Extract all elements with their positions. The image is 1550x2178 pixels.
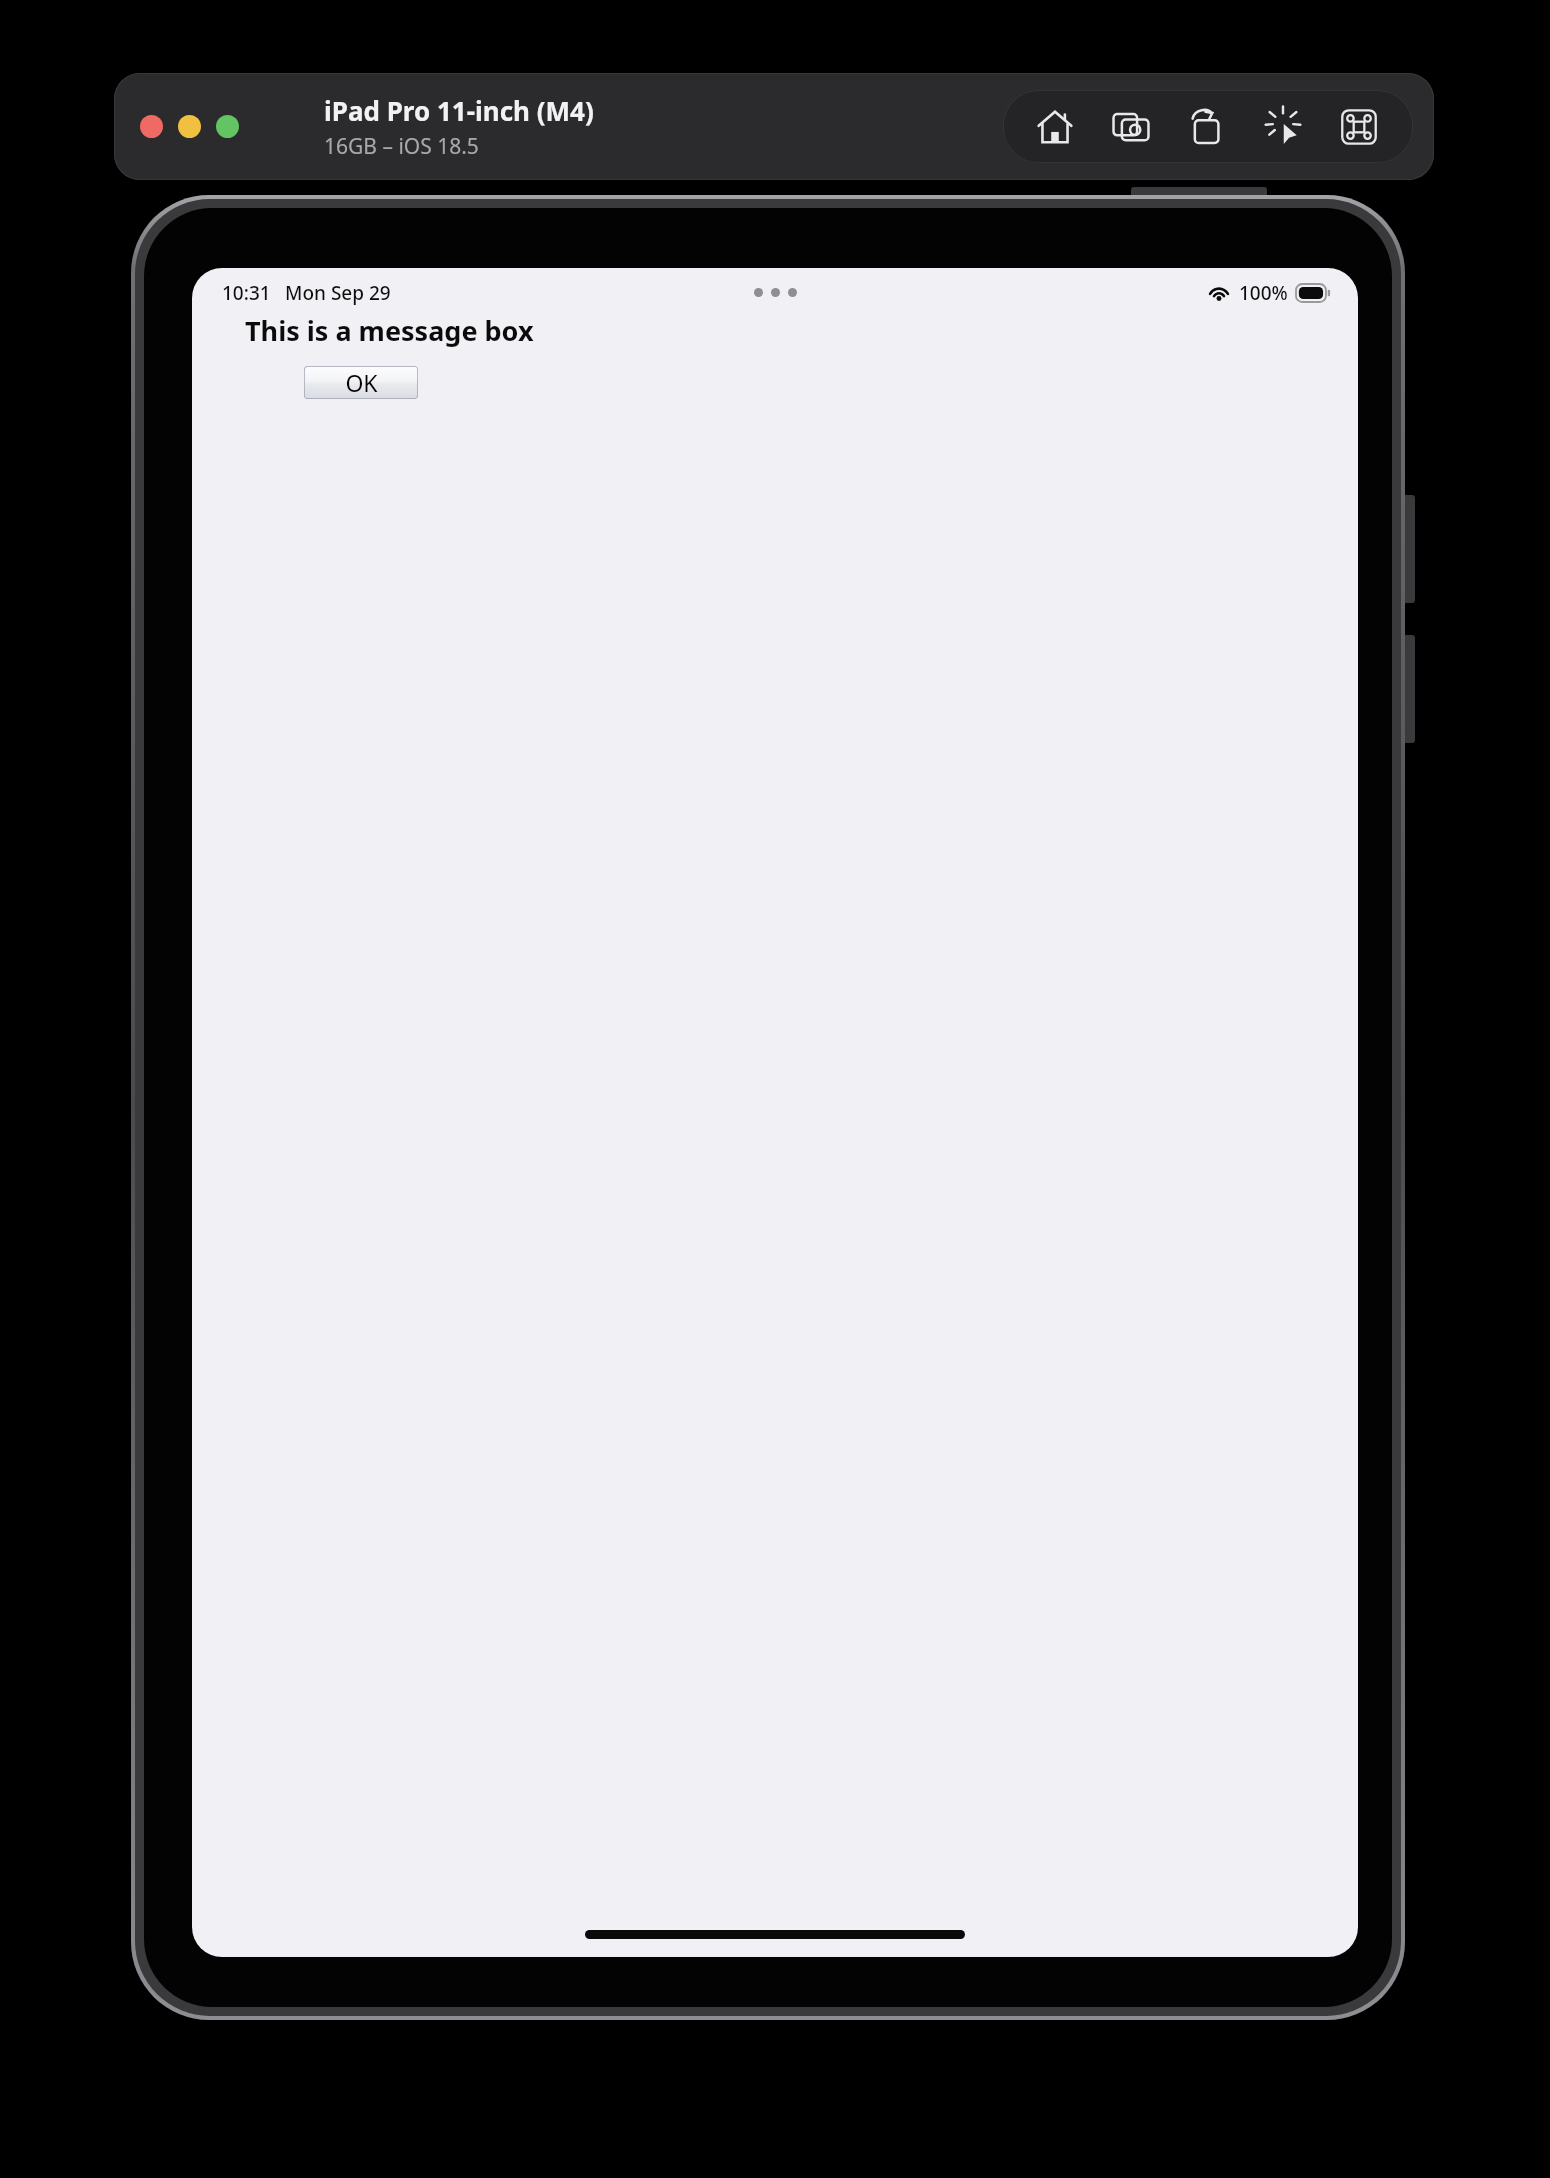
staticText: iPad Pro 11-inch (M4) [324, 93, 594, 128]
staticText: 10:31 [222, 280, 271, 306]
button[interactable]: Close [140, 115, 163, 138]
button[interactable]: Minimize [178, 115, 201, 138]
button[interactable]: Home [1017, 90, 1093, 163]
button[interactable]: Zoom [216, 115, 239, 138]
button[interactable]: Screenshot [1093, 90, 1169, 163]
button[interactable]: OK [304, 366, 418, 399]
button[interactable]: Rotate [1169, 90, 1245, 163]
staticText: Mon Sep 29 [285, 280, 391, 306]
staticText: This is a message box [245, 312, 534, 349]
staticText: 100% [1239, 280, 1288, 306]
button[interactable]: Keyboard shortcuts [1321, 90, 1397, 163]
button[interactable]: Click [1245, 90, 1321, 163]
button[interactable]: Multitasking controls [754, 288, 797, 297]
staticText: OK [345, 367, 378, 398]
staticText: 16GB – iOS 18.5 [324, 132, 479, 161]
